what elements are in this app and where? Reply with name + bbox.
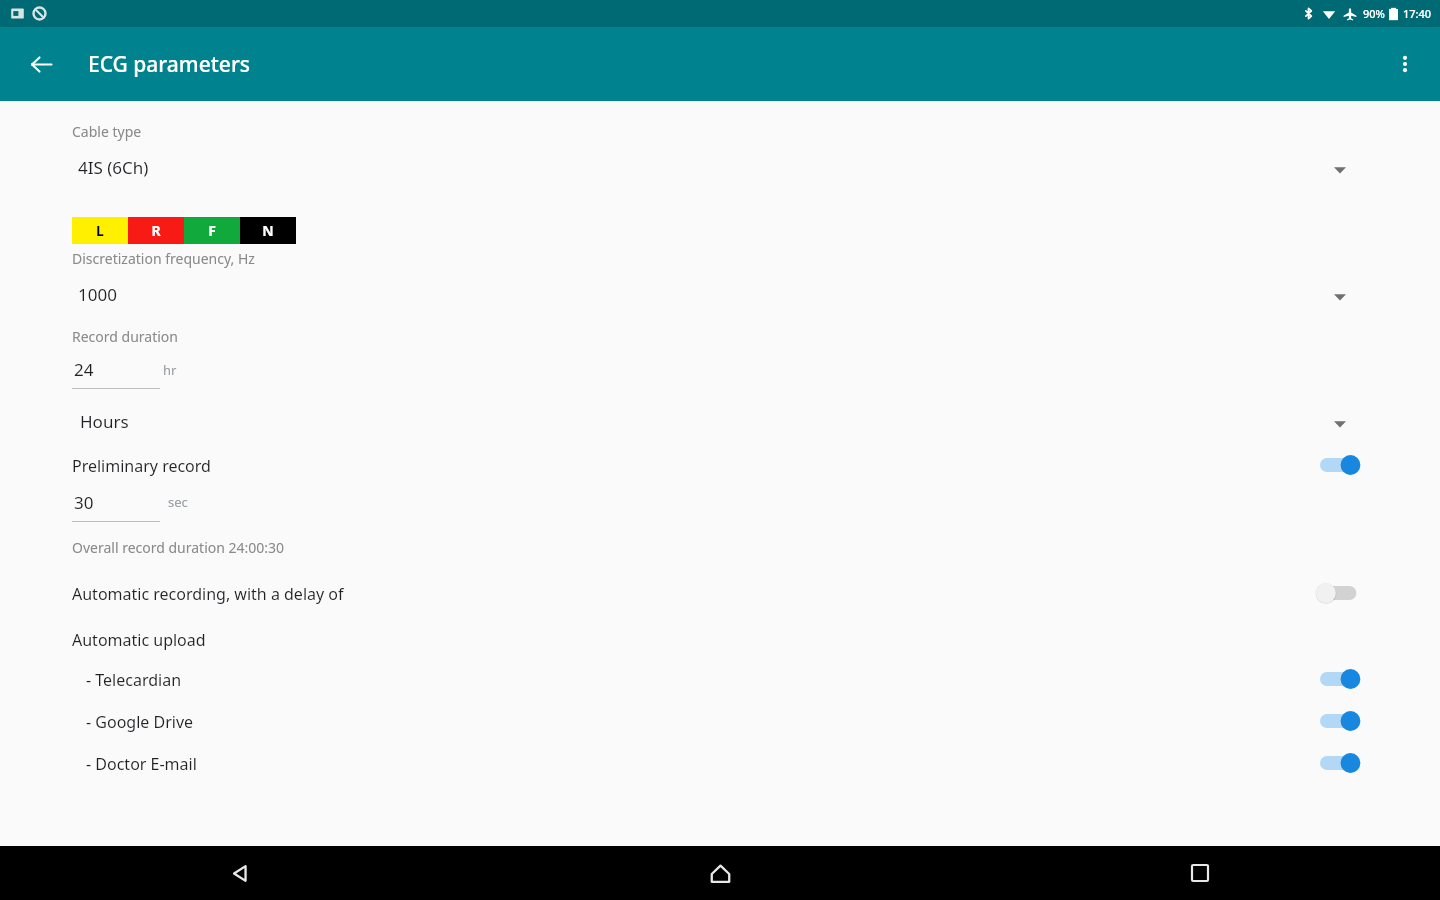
staticText: 24 bbox=[74, 358, 94, 381]
button[interactable] bbox=[1320, 748, 1372, 778]
staticText: 30 bbox=[74, 491, 94, 514]
button[interactable]: More options bbox=[1382, 41, 1428, 87]
staticText: ECG parameters bbox=[88, 50, 250, 79]
button[interactable]: 24 bbox=[72, 355, 160, 389]
staticText: 1000 bbox=[78, 283, 117, 306]
button[interactable]: - Google Drive bbox=[0, 700, 1440, 742]
staticText: R bbox=[151, 221, 161, 240]
button[interactable]: Hours bbox=[0, 399, 1440, 444]
button[interactable]: - Telecardian bbox=[0, 658, 1440, 700]
button[interactable]: Home bbox=[692, 846, 748, 900]
staticText: 90% bbox=[1363, 6, 1385, 21]
staticText: sec bbox=[168, 493, 188, 511]
button[interactable]: Automatic recording, with a delay of bbox=[0, 571, 1440, 615]
staticText: Overall record duration 24:00:30 bbox=[72, 538, 285, 557]
button[interactable] bbox=[1320, 578, 1372, 608]
staticText: - Telecardian bbox=[86, 669, 182, 691]
staticText: 17:40 bbox=[1403, 6, 1432, 21]
button[interactable]: 4IS (6Ch) bbox=[0, 145, 1440, 191]
button[interactable] bbox=[1320, 450, 1372, 480]
staticText: - Google Drive bbox=[86, 711, 194, 733]
staticText: Preliminary record bbox=[72, 455, 211, 477]
button[interactable]: Back bbox=[212, 846, 268, 900]
staticText: F bbox=[208, 221, 216, 240]
staticText: 4IS (6Ch) bbox=[78, 156, 149, 179]
button[interactable]: 1000 bbox=[0, 273, 1440, 318]
staticText: Automatic upload bbox=[72, 629, 206, 651]
staticText: Discretization frequency, Hz bbox=[72, 249, 255, 268]
button[interactable]: - Doctor E-mail bbox=[0, 742, 1440, 784]
staticText: Cable type bbox=[72, 122, 142, 141]
staticText: Hours bbox=[80, 410, 129, 433]
staticText: N bbox=[262, 221, 274, 240]
staticText: - Doctor E-mail bbox=[86, 753, 197, 775]
staticText: Automatic recording, with a delay of bbox=[72, 583, 344, 605]
staticText: hr bbox=[163, 361, 177, 379]
staticText: L bbox=[96, 221, 104, 240]
button[interactable]: 30 bbox=[72, 488, 160, 522]
button[interactable]: Recent apps bbox=[1172, 846, 1228, 900]
button[interactable] bbox=[1320, 664, 1372, 694]
button[interactable]: Preliminary record bbox=[0, 443, 1440, 487]
button[interactable] bbox=[1320, 706, 1372, 736]
staticText: Record duration bbox=[72, 327, 178, 346]
button[interactable]: Back bbox=[18, 41, 64, 87]
